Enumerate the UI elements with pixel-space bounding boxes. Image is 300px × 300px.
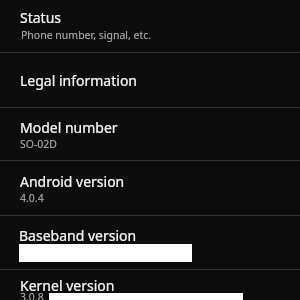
staticText: Phone number, signal, etc. (21, 28, 152, 42)
button[interactable]: Kernel version (0, 270, 300, 300)
button[interactable]: Legal information (0, 53, 300, 107)
button[interactable]: Baseband version (0, 216, 300, 269)
staticText: Baseband version (19, 226, 137, 245)
staticText: Model number (20, 118, 118, 137)
staticText: Status (20, 8, 62, 27)
button[interactable]: Model number (0, 108, 300, 160)
button[interactable]: Android version (0, 161, 300, 215)
staticText: SO-02D (20, 137, 58, 151)
staticText: Legal information (20, 71, 138, 90)
staticText: 3.0.8 (20, 290, 44, 300)
staticText: Android version (20, 172, 125, 191)
button[interactable]: Status (0, 0, 300, 52)
staticText: 4.0.4 (20, 191, 44, 205)
staticText: Kernel version (20, 276, 115, 295)
